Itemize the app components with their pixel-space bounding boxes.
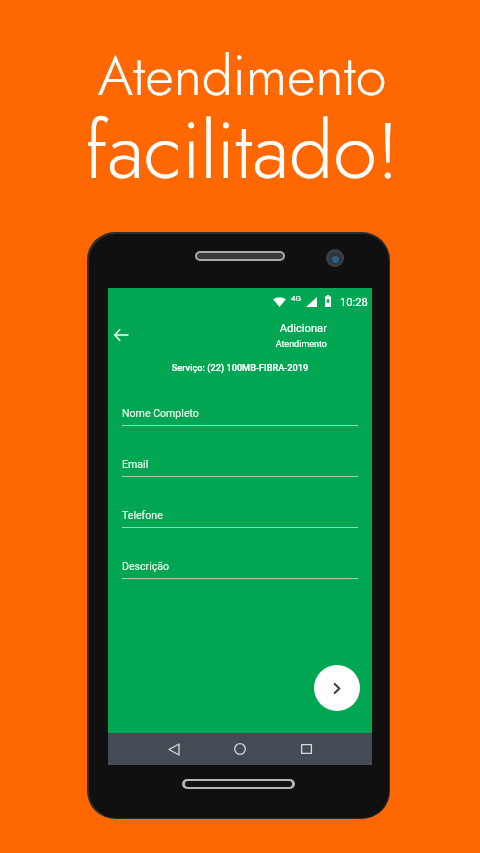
button[interactable]: Telefone: [122, 501, 358, 528]
staticText: Serviço: (22) 100MB-FIBRA-2019: [108, 362, 372, 373]
staticText: Atendimento: [275, 339, 327, 350]
button[interactable]: Recentes: [292, 735, 320, 763]
staticText: facilitado!: [2, 93, 480, 207]
button[interactable]: Descrição: [122, 552, 358, 579]
staticText: Telefone: [122, 509, 163, 521]
button[interactable]: Início: [226, 735, 254, 763]
staticText: 4G: [291, 294, 301, 303]
button[interactable]: Voltar: [160, 735, 188, 763]
button[interactable]: Nome Completo: [122, 399, 358, 426]
staticText: Email: [122, 458, 149, 470]
button[interactable]: Email: [122, 450, 358, 477]
staticText: Descrição: [122, 560, 170, 572]
staticText: Atendimento: [2, 36, 480, 116]
button[interactable]: Voltar: [108, 322, 133, 347]
staticText: Nome Completo: [122, 407, 199, 419]
staticText: Adicionar: [279, 322, 327, 335]
staticText: 10:28: [340, 296, 368, 309]
button[interactable]: Avançar: [314, 665, 360, 711]
